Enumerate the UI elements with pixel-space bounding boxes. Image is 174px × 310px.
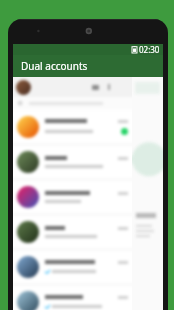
button[interactable] bbox=[13, 285, 132, 310]
button[interactable] bbox=[13, 110, 132, 144]
staticText: Dual accounts bbox=[21, 59, 88, 73]
button[interactable] bbox=[13, 145, 132, 179]
button[interactable] bbox=[13, 180, 132, 214]
button[interactable]: Dual accounts bbox=[13, 55, 163, 77]
button[interactable] bbox=[13, 250, 132, 284]
button[interactable] bbox=[13, 215, 132, 249]
button[interactable]: Camera bbox=[92, 85, 99, 90]
button[interactable]: More options bbox=[108, 84, 110, 90]
button[interactable]: Profile bbox=[16, 80, 31, 95]
staticText: 02:30 bbox=[139, 44, 160, 55]
